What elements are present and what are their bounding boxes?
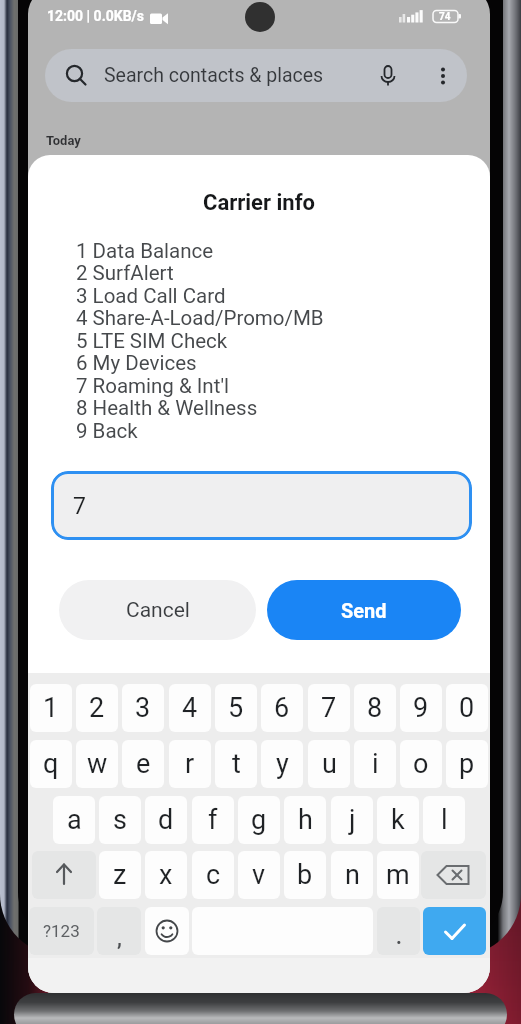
staticText: 3 [135,692,151,724]
staticText: c [206,859,221,891]
button[interactable]: Emoji [145,907,189,955]
staticText: 12:00 | 0.0KB/s [47,8,145,24]
staticText: b [297,859,313,891]
staticText: 8 Health & Wellness [76,396,258,420]
staticText: l [441,804,448,836]
staticText: w [87,748,108,780]
staticText: d [158,804,174,836]
button[interactable]: 9 [400,684,442,732]
staticText: u [322,748,337,780]
staticText: 8 [367,692,383,724]
button[interactable]: p [446,740,488,788]
staticText: z [113,859,127,891]
button[interactable]: x [145,851,187,899]
button[interactable]: , [97,907,141,955]
button[interactable]: j [331,796,373,844]
button[interactable]: y [261,740,303,788]
staticText: p [459,748,475,780]
button[interactable]: 2 [76,684,118,732]
staticText: j [349,804,356,836]
button[interactable]: Enter [423,907,486,955]
button[interactable]: u [308,740,350,788]
staticText: v [252,859,266,891]
staticText: h [298,804,313,836]
staticText: 9 Back [76,419,138,443]
staticText: 2 [89,692,105,724]
button[interactable]: Cancel [59,580,256,640]
staticText: 4 [182,692,198,724]
staticText: 5 LTE SIM Check [76,329,228,353]
button[interactable]: q [30,740,72,788]
button[interactable]: v [238,851,280,899]
button[interactable]: e [122,740,164,788]
button[interactable]: . [377,907,420,955]
staticText: 1 Data Balance [76,239,214,263]
staticText: q [43,748,59,780]
button[interactable]: s [99,796,141,844]
staticText: , [117,926,122,949]
staticText: s [113,804,127,836]
button[interactable]: Search contacts & places [45,49,467,102]
staticText: g [251,804,267,836]
button[interactable]: ?123 [29,907,94,955]
staticText: Send [341,599,387,622]
button[interactable]: 0 [446,684,488,732]
staticText: 0 [459,692,475,724]
staticText: 4 Share-A-Load/Promo/MB [76,306,324,330]
staticText: 9 [413,692,429,724]
staticText: Today [46,133,81,148]
button[interactable]: Voice search [368,56,408,96]
staticText: 6 [274,692,290,724]
button[interactable]: 5 [215,684,257,732]
staticText: k [391,804,405,836]
button[interactable]: z [99,851,141,899]
button[interactable]: Shift [32,851,96,899]
button[interactable]: i [354,740,396,788]
button[interactable]: l [423,796,465,844]
button[interactable]: r [169,740,211,788]
staticText: Cancel [126,598,190,623]
staticText: x [159,859,173,891]
button[interactable]: 7 [51,471,472,540]
staticText: 1 [43,692,59,724]
button[interactable]: m [377,851,419,899]
staticText: . [396,925,402,948]
button[interactable]: c [192,851,234,899]
button[interactable]: o [400,740,442,788]
staticText: 7 [73,493,86,520]
button[interactable]: h [284,796,326,844]
button[interactable]: 3 [122,684,164,732]
staticText: 6 My Devices [76,351,197,375]
staticText: 74 [439,11,451,23]
button[interactable]: More options [423,56,463,96]
button[interactable]: g [238,796,280,844]
button[interactable]: 7 [308,684,350,732]
staticText: 2 SurfAlert [76,261,174,285]
button[interactable]: 4 [169,684,211,732]
button[interactable]: b [284,851,326,899]
button[interactable]: k [377,796,419,844]
button[interactable]: d [145,796,187,844]
button[interactable]: 8 [354,684,396,732]
staticText: m [386,859,410,891]
button[interactable]: t [215,740,257,788]
staticText: o [413,748,429,780]
button[interactable]: n [331,851,373,899]
button[interactable]: Backspace [421,851,486,899]
staticText: ?123 [43,921,80,941]
staticText: y [276,748,289,780]
staticText: a [67,804,82,836]
button[interactable]: Send [267,580,461,640]
button[interactable]: 6 [261,684,303,732]
button[interactable]: a [53,796,95,844]
staticText: t [232,748,241,780]
staticText: f [208,804,218,836]
button[interactable]: f [192,796,234,844]
button[interactable]: w [76,740,118,788]
staticText: r [185,748,195,780]
button[interactable]: 1 [30,684,72,732]
staticText: Search contacts & places [104,64,324,87]
staticText: n [345,859,360,891]
staticText: 7 Roaming & Int'l [76,374,229,398]
